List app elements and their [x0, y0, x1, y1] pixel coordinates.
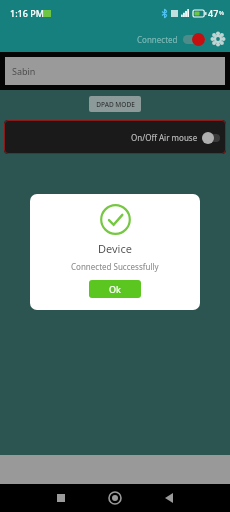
staticText: Ok: [109, 283, 121, 295]
button[interactable]: DPAD MODE: [89, 96, 141, 112]
staticText: On/Off Air mouse: [131, 132, 198, 143]
button[interactable]: Ok: [89, 280, 141, 298]
staticText: 47: [208, 7, 219, 19]
staticText: Connected Successfully: [71, 261, 159, 272]
button[interactable]: Sabin: [5, 57, 225, 85]
button[interactable]: Connection toggle: [183, 33, 205, 46]
button[interactable]: Back: [158, 487, 180, 509]
staticText: Device: [98, 241, 132, 256]
button[interactable]: On/Off Air mouse: [131, 131, 220, 144]
staticText: %: [219, 9, 224, 17]
button[interactable]: Recents: [50, 487, 72, 509]
staticText: Connected: [137, 34, 178, 45]
staticText: Sabin: [12, 65, 36, 77]
staticText: 1:16 PM: [10, 7, 44, 19]
button[interactable]: Home: [104, 487, 126, 509]
button[interactable]: Settings: [211, 32, 225, 46]
staticText: DPAD MODE: [96, 100, 135, 109]
